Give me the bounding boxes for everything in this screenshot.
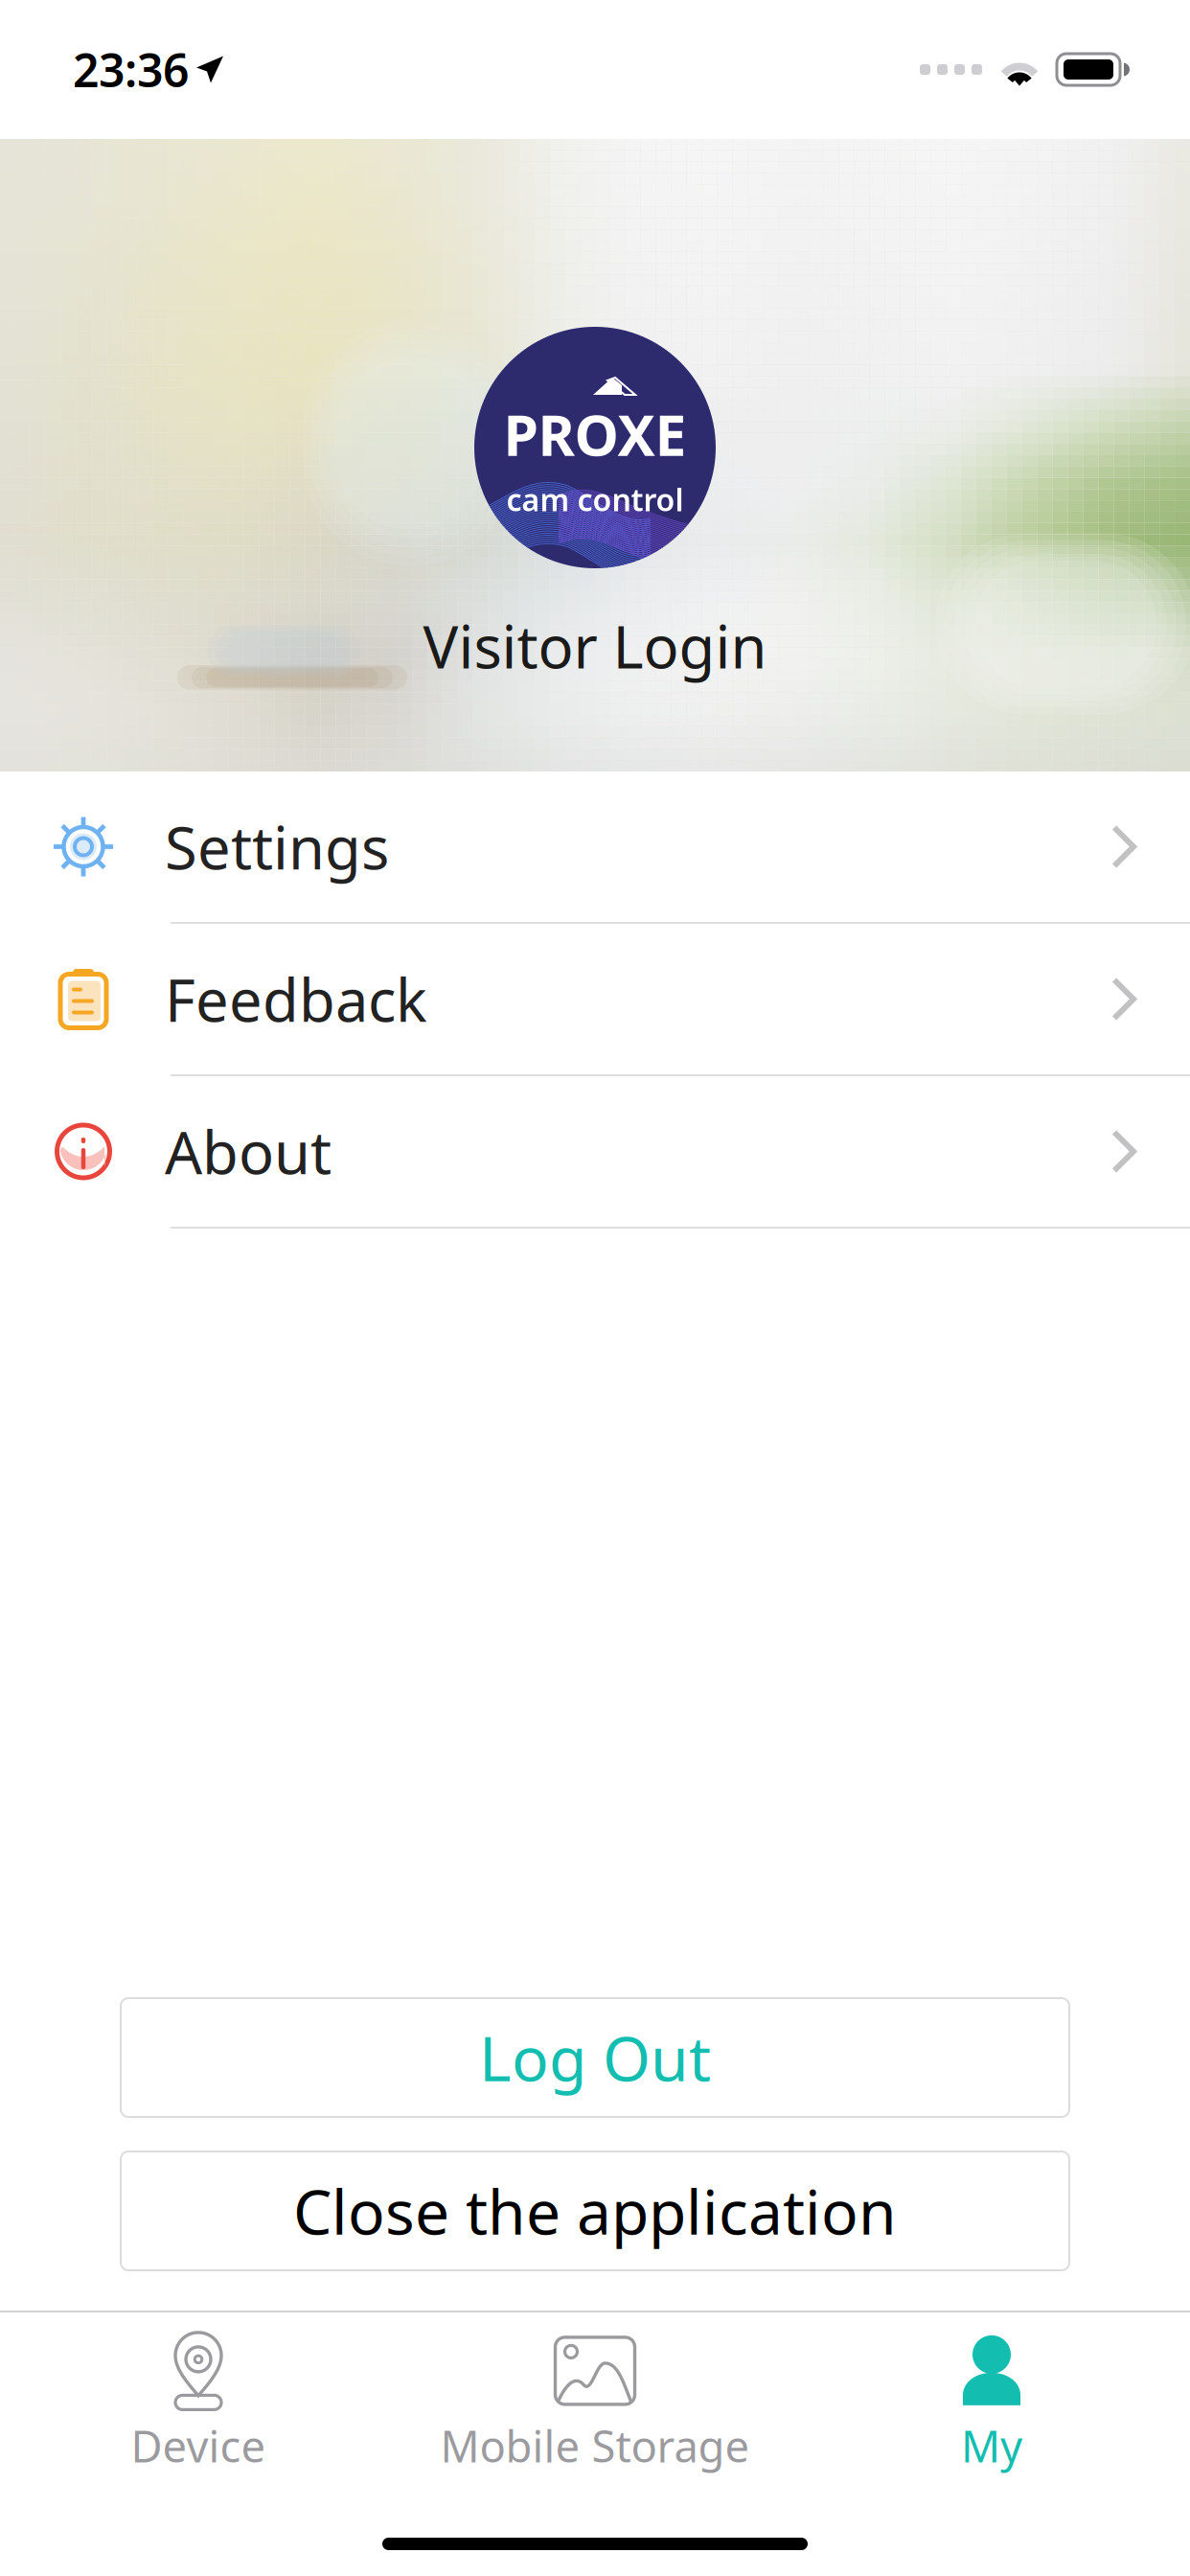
button[interactable]: Close the application — [0, 2151, 1190, 2270]
staticText: Visitor Login — [423, 607, 767, 685]
button[interactable]: Device — [0, 2312, 397, 2480]
staticText: Log Out — [479, 2017, 711, 2098]
staticText: PROXE — [503, 397, 687, 471]
staticText: My — [961, 2417, 1022, 2475]
staticText: Settings — [165, 808, 389, 886]
button[interactable]: About — [0, 1076, 1190, 1229]
staticText: Mobile Storage — [440, 2417, 750, 2475]
button[interactable]: My — [793, 2312, 1190, 2480]
staticText: Close the application — [293, 2170, 897, 2252]
staticText: About — [165, 1112, 332, 1190]
staticText: 23:36 — [73, 39, 189, 100]
staticText: Feedback — [165, 960, 427, 1038]
button[interactable]: Mobile Storage — [397, 2312, 793, 2480]
staticText: cam control — [506, 479, 684, 520]
button[interactable]: Settings — [0, 771, 1190, 924]
staticText: Device — [131, 2417, 266, 2475]
button[interactable]: Log Out — [0, 1998, 1190, 2117]
button[interactable]: Feedback — [0, 924, 1190, 1076]
